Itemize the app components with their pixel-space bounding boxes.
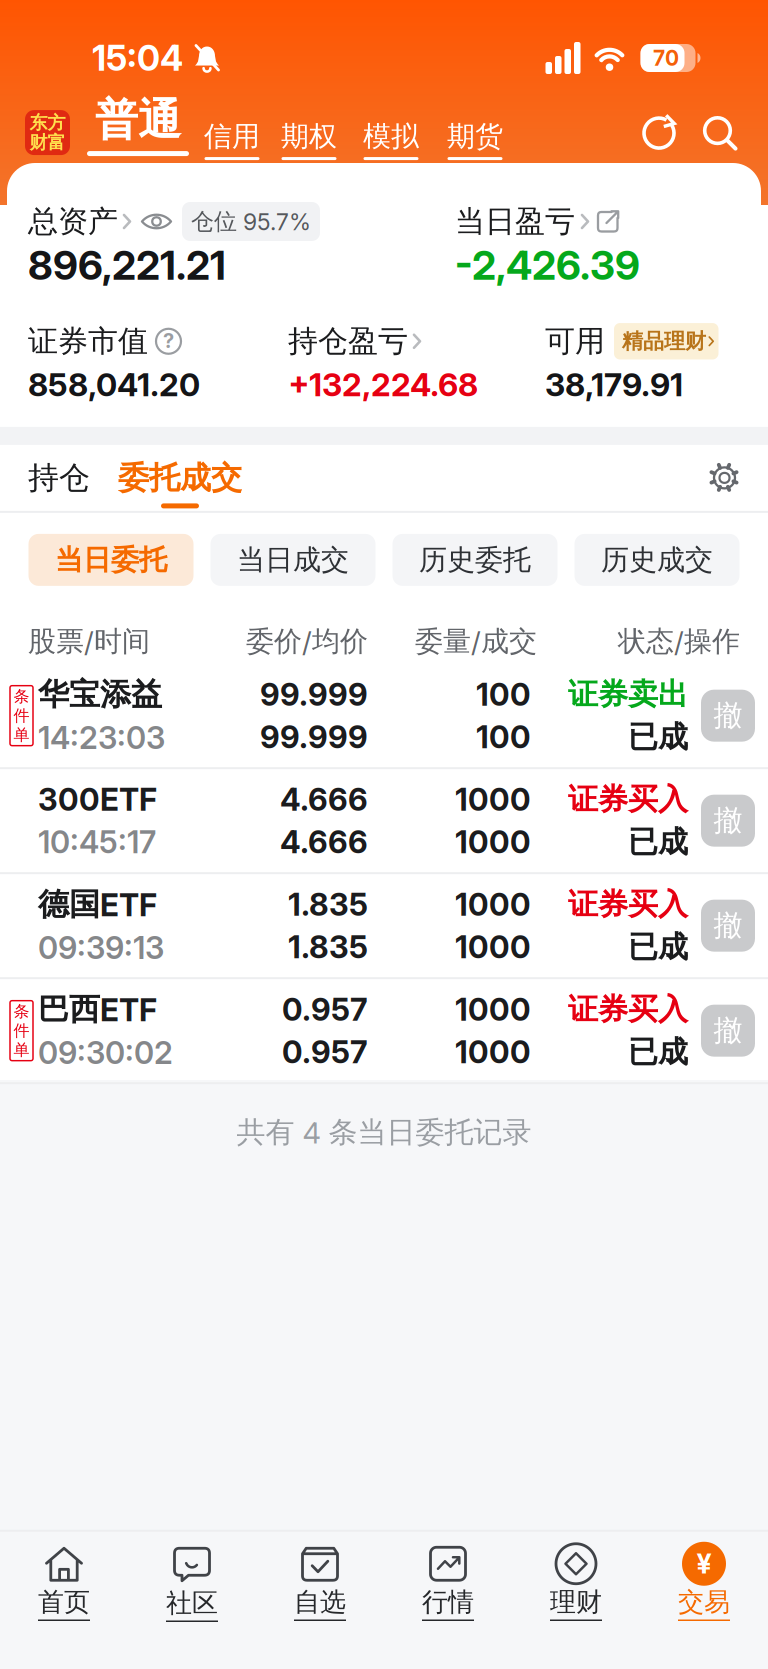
button[interactable]: 首页 [38,1543,90,1621]
button[interactable]: 期权 [281,119,337,160]
staticText: 已成 [628,928,688,966]
staticText: 0.957 [282,1033,368,1071]
staticText: 社区 [166,1587,218,1619]
staticText: 撤 [713,697,742,734]
staticText: 行情 [422,1586,474,1618]
button[interactable]: 搜索 [702,115,738,151]
staticText: 1000 [455,886,531,923]
button[interactable]: 当日成交 [210,534,375,586]
staticText: 华宝添益 [38,675,162,714]
button[interactable]: 期货 [447,119,503,160]
button[interactable]: 总资产 [28,203,132,240]
staticText: ? [163,329,174,353]
staticText: 撤 [713,1012,742,1049]
staticText: 证券市值 [28,322,148,360]
staticText: 条 [13,686,29,707]
button[interactable]: 当日盈亏 [455,203,621,240]
button[interactable]: 普通 [87,93,189,156]
button[interactable]: 刷新 [640,113,678,152]
staticText: 4.666 [280,823,368,861]
staticText: 德国ETF [38,885,157,924]
staticText: 证券卖出 [568,675,688,713]
staticText: 15:04 [92,37,183,79]
button[interactable]: 历史成交 [574,534,739,586]
staticText: 仓位 95.7% [191,207,311,236]
staticText: 10:45:17 [38,823,156,861]
staticText: 委托成交 [118,458,242,497]
staticText: 09:30:02 [38,1034,173,1071]
staticText: 100 [476,718,531,756]
button[interactable]: 撤 [701,1005,755,1057]
button[interactable]: 精品理财 [614,323,718,359]
staticText: 历史成交 [601,542,713,577]
button[interactable]: 撤 [701,690,755,742]
button[interactable]: 历史委托 [392,534,557,586]
staticText: 当日盈亏 [455,203,575,240]
staticText: 1000 [455,1033,531,1071]
staticText: 已成 [628,1033,688,1071]
staticText: 普通 [95,93,181,147]
staticText: 委量/成交 [415,624,537,659]
staticText: 交易 [678,1586,730,1618]
staticText: 条 [13,1001,29,1022]
staticText: 99.999 [260,676,368,713]
staticText: 历史委托 [419,542,531,577]
staticText: 单 [13,725,29,745]
button[interactable]: 行情 [422,1543,474,1621]
staticText: 1000 [455,781,531,818]
staticText: 理财 [550,1586,602,1618]
staticText: 证券买入 [568,885,688,923]
staticText: 持仓 [28,458,90,497]
staticText: 股票/时间 [28,624,150,659]
staticText: 委价/均价 [246,624,368,659]
button[interactable]: 隐藏金额 [140,211,173,232]
staticText: 已成 [628,823,688,861]
staticText: 1000 [455,823,531,861]
staticText: 1.835 [288,928,368,966]
staticText: 件 [13,706,29,726]
staticText: 共有 4 条当日委托记录 [236,1114,531,1151]
staticText: 自选 [294,1586,346,1618]
staticText: 300ETF [38,781,157,818]
staticText: 4.666 [280,781,368,818]
staticText: 财富 [29,131,65,154]
button[interactable]: 设置 [707,460,742,495]
staticText: 可用 [545,322,605,360]
button[interactable]: 撤 [701,900,755,952]
staticText: 证券买入 [568,990,688,1028]
staticText: 东方 [29,111,65,134]
staticText: 14:23:03 [38,719,165,756]
staticText: 09:39:13 [38,929,164,966]
staticText: 单 [13,1040,29,1060]
button[interactable]: ¥ [678,1543,730,1621]
staticText: 896,221.21 [28,241,226,289]
staticText: 首页 [38,1586,90,1618]
staticText: ¥ [696,1547,711,1580]
staticText: 状态/操作 [618,624,740,659]
staticText: 99.999 [260,718,368,756]
staticText: 当日委托 [55,542,167,577]
staticText: 巴西ETF [38,990,157,1029]
staticText: 件 [13,1021,29,1041]
button[interactable]: 自选 [294,1543,346,1621]
staticText: 持仓盈亏 [288,322,408,360]
button[interactable]: 持仓 [28,458,90,497]
button[interactable]: 社区 [166,1543,218,1622]
staticText: 100 [476,676,531,713]
staticText: 信用 [204,119,260,154]
button[interactable]: 委托成交 [118,458,242,508]
staticText: 撤 [713,802,742,839]
staticText: -2,426.39 [455,241,640,289]
button[interactable]: 模拟 [363,119,419,160]
button[interactable]: 信用 [204,119,260,160]
button[interactable]: 仓位 95.7% [182,202,320,241]
staticText: 撤 [713,907,742,944]
staticText: 模拟 [363,119,419,154]
staticText: +132,224.68 [288,365,478,404]
button[interactable]: 当日委托 [28,534,193,586]
button[interactable]: 撤 [701,795,755,847]
staticText: 已成 [628,718,688,756]
staticText: 1.835 [288,886,368,923]
button[interactable]: 理财 [550,1543,602,1621]
staticText: 858,041.20 [28,365,200,404]
